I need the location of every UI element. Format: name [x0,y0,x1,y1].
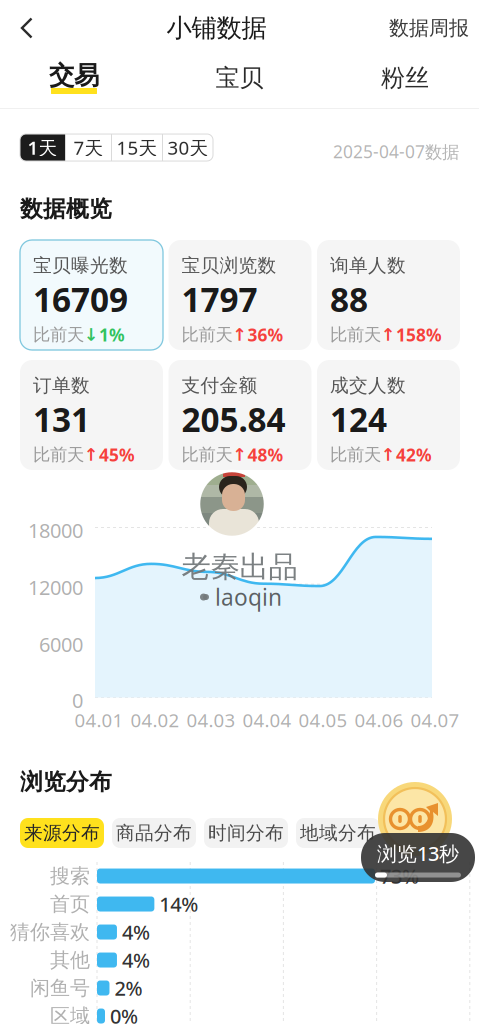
staticText: 老秦出品 [181,549,297,585]
staticText: 订单数 [33,374,90,397]
button[interactable]: 粉丝 [355,58,455,98]
staticText: 16709 [33,277,128,321]
button[interactable]: 来源分布 [20,818,104,848]
staticText: 比前天 [330,444,381,465]
staticText: 12000 [28,574,83,601]
staticText: 比前天 [181,324,232,345]
button[interactable]: 数据周报 [379,0,479,56]
button[interactable]: Back [0,0,54,56]
staticText: 宝贝 [215,63,263,93]
staticText: 131 [33,397,90,441]
staticText: ↑ [84,445,99,465]
staticText: 数据周报 [389,16,469,40]
staticText: 04.02 [130,708,179,732]
staticText: 04.03 [186,708,235,732]
staticText: 支付金额 [181,374,257,397]
button[interactable]: 时间分布 [204,818,288,848]
staticText: 1天 [27,135,57,160]
staticText: 小铺数据 [166,12,266,43]
staticText: 0% [110,1003,138,1024]
button[interactable]: 7天 [66,134,111,161]
staticText: 首页 [50,892,90,916]
staticText: 04.05 [298,708,347,732]
staticText: 成交人数 [330,374,406,397]
staticText: 其他 [50,948,90,972]
button[interactable]: 商品分布 [112,818,196,848]
staticText: 18000 [28,517,83,544]
staticText: 45% [99,443,135,466]
staticText: 73% [380,863,419,889]
button[interactable]: 交易 [24,58,124,98]
staticText: 1% [99,323,125,346]
staticText: 询单人数 [330,254,406,277]
staticText: 比前天 [181,444,232,465]
button[interactable]: 支付金额 [168,360,311,470]
button[interactable]: 15天 [112,134,162,161]
staticText: 搜索 [50,864,90,888]
staticText: 205.84 [181,397,285,441]
staticText: 来源分布 [24,821,100,844]
button[interactable]: 询单人数 [317,240,460,350]
staticText: 浏览分布 [20,768,112,796]
staticText: ↑ [232,445,247,465]
button[interactable]: 30天 [163,134,213,161]
staticText: 猜你喜欢 [10,920,90,944]
staticText: 30天 [167,135,208,160]
staticText: 比前天 [33,324,84,345]
staticText: 36% [247,323,283,346]
staticText: 比前天 [330,324,381,345]
staticText: 粉丝 [381,63,429,93]
button[interactable]: 地域分布 [296,818,380,848]
staticText: 2025-04-07数据 [333,140,459,163]
staticText: 04.01 [74,708,123,732]
staticText: 时间分布 [208,821,284,844]
staticText: 宝贝浏览数 [181,254,276,277]
staticText: 48% [247,443,283,466]
staticText: laoqin [215,582,282,612]
staticText: ↓ [84,325,99,345]
staticText: 浏览13秒 [377,840,459,867]
staticText: 比前天 [33,444,84,465]
staticText: 04.04 [242,708,291,732]
staticText: 宝贝曝光数 [33,254,128,277]
staticText: 区域 [50,1004,90,1024]
staticText: 15天 [116,135,157,160]
staticText: 124 [330,397,387,441]
staticText: 2% [114,975,142,1001]
staticText: 地域分布 [300,821,376,844]
button[interactable]: 宝贝浏览数 [168,240,311,350]
staticText: 158% [396,323,442,346]
button[interactable]: 成交人数 [317,360,460,470]
staticText: 42% [396,443,432,466]
staticText: ↑ [381,445,396,465]
staticText: 4% [122,947,150,973]
staticText: 交易 [49,60,99,91]
button[interactable]: 1天 [20,134,65,161]
staticText: 6000 [39,631,83,658]
staticText: 1797 [181,277,257,321]
staticText: ↑ [232,325,247,345]
staticText: 7天 [73,135,103,160]
staticText: ↑ [381,325,396,345]
staticText: 04.06 [354,708,403,732]
button[interactable]: 宝贝 [189,58,289,98]
staticText: 闲鱼号 [30,976,90,1000]
staticText: 14% [159,891,198,917]
staticText: 0 [72,687,83,714]
button[interactable]: 订单数 [20,360,163,470]
button[interactable]: 宝贝曝光数 [20,240,163,350]
staticText: 4% [122,919,150,945]
staticText: 04.07 [410,708,459,732]
staticText: 数据概览 [20,195,112,223]
staticText: 88 [330,277,368,321]
staticText: 商品分布 [116,821,192,844]
